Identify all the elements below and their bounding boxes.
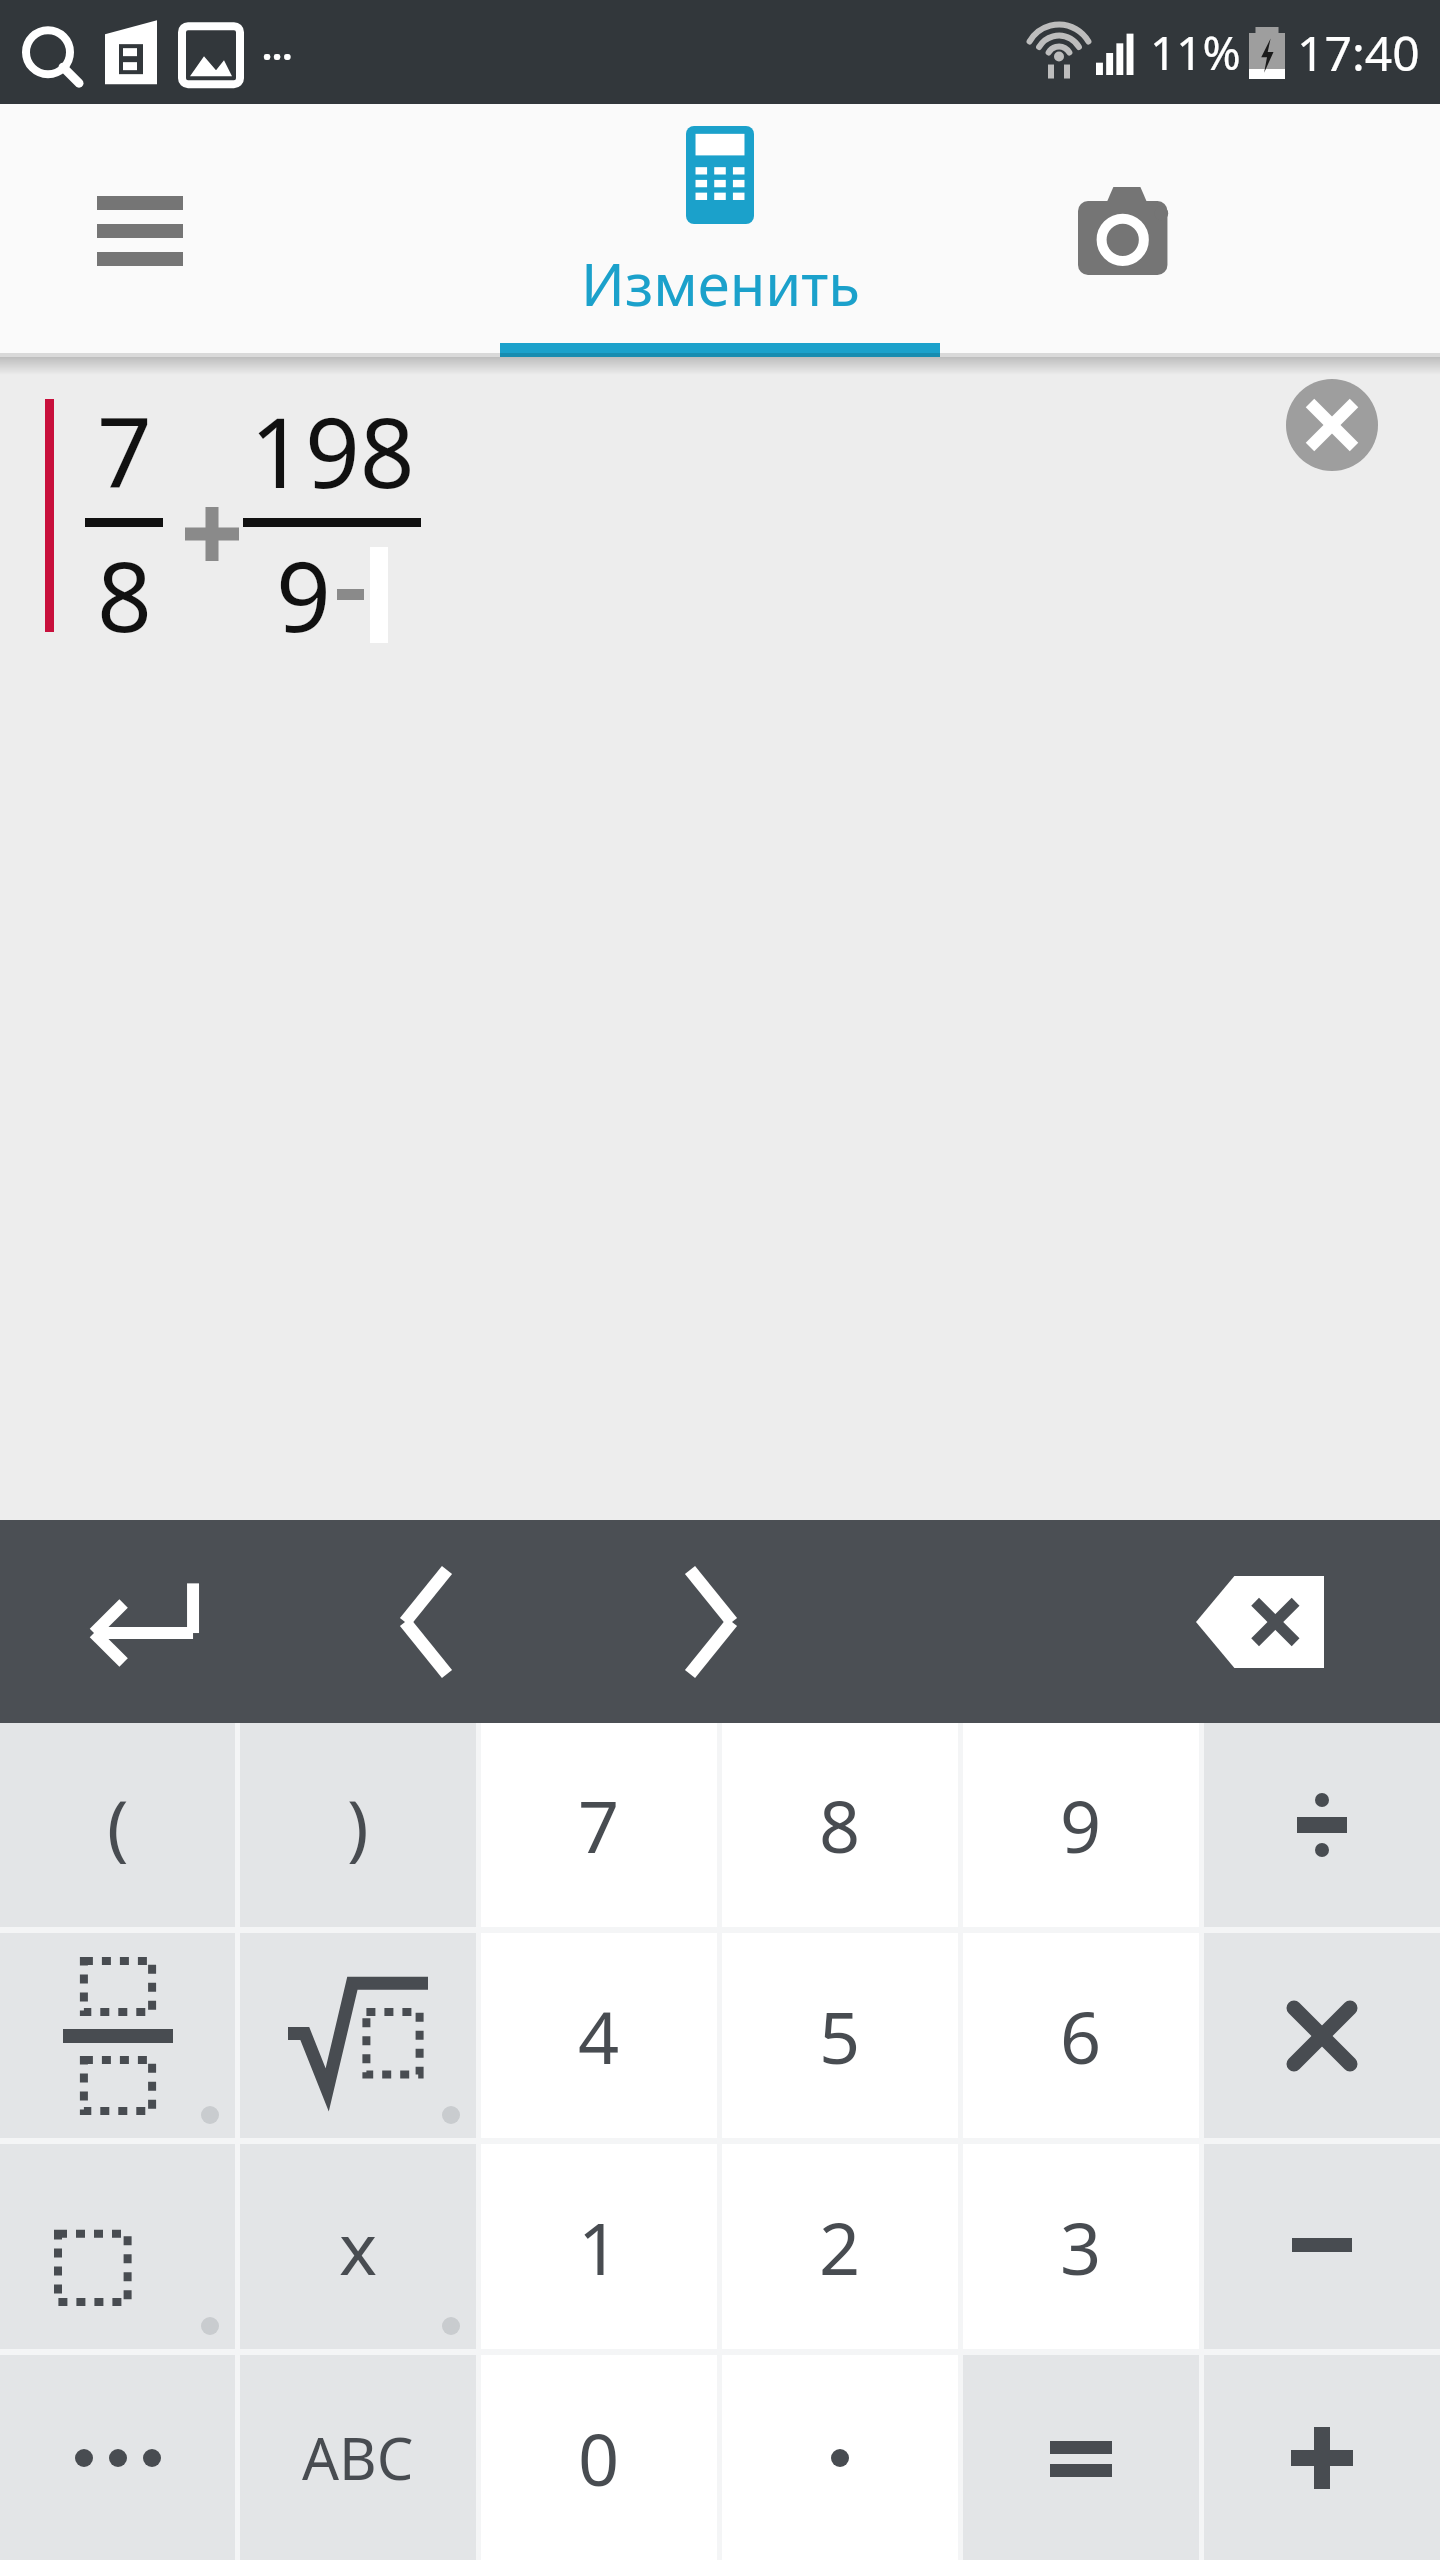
button[interactable]: 2 (722, 2144, 958, 2349)
staticText: 2 (819, 2198, 861, 2296)
button[interactable]: Menu (80, 171, 200, 291)
staticText: 7 (578, 1776, 620, 1874)
button[interactable]: 9 (963, 1723, 1199, 1927)
button[interactable]: ABC (240, 2355, 476, 2560)
button[interactable]: ( (0, 1723, 235, 1927)
staticText: 8 (97, 529, 152, 660)
button[interactable]: 1 (481, 2144, 717, 2349)
button[interactable]: Square root (240, 1933, 476, 2138)
button[interactable]: Backspace (1170, 1520, 1350, 1723)
button[interactable]: Fraction (0, 1933, 235, 2138)
staticText: ABC (302, 2418, 414, 2497)
staticText: 8 (819, 1776, 861, 1874)
staticText: 11% (1150, 21, 1241, 84)
button[interactable]: 4 (481, 1933, 717, 2138)
button[interactable]: Square (0, 2144, 235, 2349)
staticText: 4 (578, 1987, 620, 2085)
button[interactable]: Plus (1204, 2355, 1440, 2560)
button[interactable]: 3 (963, 2144, 1199, 2349)
button[interactable]: Equals (963, 2355, 1199, 2560)
staticText: 9 (276, 529, 331, 660)
staticText: 9 (1060, 1776, 1102, 1874)
button[interactable]: More (0, 2355, 235, 2560)
button[interactable]: x (240, 2144, 476, 2349)
button[interactable]: Decimal point (722, 2355, 958, 2560)
button[interactable]: Enter (56, 1520, 236, 1723)
button[interactable]: Изменить (490, 104, 950, 357)
staticText: 0 (578, 2409, 620, 2507)
staticText: ) (347, 1776, 369, 1874)
staticText: Изменить (581, 244, 860, 323)
staticText: x (339, 2198, 378, 2296)
button[interactable]: 7 (481, 1723, 717, 1927)
button[interactable]: 0 (481, 2355, 717, 2560)
button[interactable]: ) (240, 1723, 476, 1927)
staticText: 1 (578, 2198, 620, 2296)
button[interactable]: Camera (1060, 161, 1200, 301)
staticText: 7 (97, 385, 152, 516)
staticText: 198 (250, 385, 415, 516)
button[interactable]: Move right (621, 1520, 801, 1723)
button[interactable]: Divide (1204, 1723, 1440, 1927)
staticText: 6 (1060, 1987, 1102, 2085)
staticText: ( (107, 1776, 129, 1874)
button[interactable]: 8 (722, 1723, 958, 1927)
button[interactable]: Clear (1286, 379, 1378, 471)
button[interactable]: Multiply (1204, 1933, 1440, 2138)
staticText: 5 (819, 1987, 861, 2085)
button[interactable]: 5 (722, 1933, 958, 2138)
staticText: ... (262, 22, 293, 71)
staticText: 17:40 (1297, 20, 1420, 85)
button[interactable]: Move left (336, 1520, 516, 1723)
button[interactable]: 6 (963, 1933, 1199, 2138)
button[interactable]: Minus (1204, 2144, 1440, 2349)
staticText: 3 (1060, 2198, 1102, 2296)
